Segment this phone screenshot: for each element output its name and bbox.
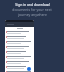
button[interactable] [5, 71, 34, 72]
staticText: Sign in and download [15, 2, 50, 7]
button[interactable] [5, 36, 34, 41]
button[interactable] [5, 51, 34, 56]
button[interactable] [5, 56, 34, 61]
staticText: documents for your next [12, 7, 52, 12]
button[interactable] [5, 41, 34, 46]
button[interactable] [5, 46, 34, 51]
staticText: journey anywhere [18, 12, 47, 17]
button[interactable]: Add [27, 67, 31, 71]
button[interactable] [5, 66, 34, 71]
button[interactable] [5, 61, 34, 66]
button[interactable] [5, 31, 34, 36]
